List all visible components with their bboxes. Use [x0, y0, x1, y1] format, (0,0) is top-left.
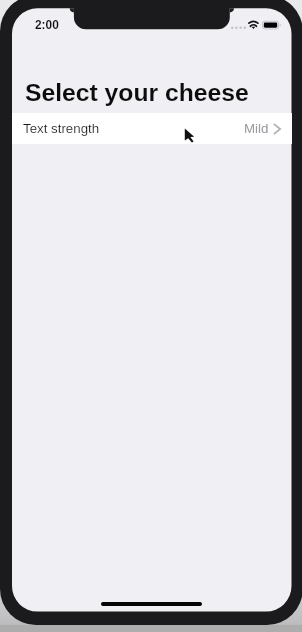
staticText: Select your cheese [25, 79, 249, 107]
staticText: 2:00 [35, 18, 59, 31]
staticText: Text strength [23, 121, 100, 136]
button[interactable]: Text strength [12, 113, 292, 144]
staticText: Mild [244, 121, 269, 136]
